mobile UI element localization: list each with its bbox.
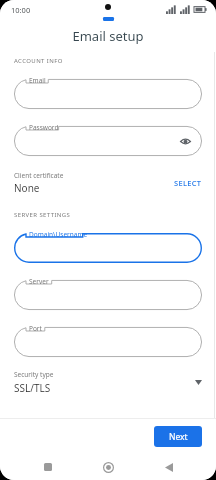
staticText: Next — [169, 431, 188, 443]
button[interactable]: Email — [14, 73, 202, 109]
staticText: Port — [29, 324, 42, 333]
staticText: ACCOUNT INFO — [14, 57, 63, 65]
button[interactable]: Server — [14, 274, 202, 310]
button[interactable]: SELECT — [174, 178, 202, 188]
staticText: 10:00 — [11, 5, 31, 15]
button[interactable]: Security type — [0, 370, 216, 395]
button[interactable]: Show password — [178, 134, 192, 148]
button[interactable]: Domain\Username — [14, 227, 202, 263]
staticText: Domain\Username — [29, 230, 88, 239]
staticText: Security type — [14, 370, 54, 379]
staticText: Client certificate — [14, 171, 64, 180]
button[interactable]: Password — [14, 120, 202, 156]
staticText: Password — [29, 123, 59, 132]
button[interactable]: Recent apps — [35, 454, 61, 480]
staticText: None — [14, 181, 40, 195]
staticText: SERVER SETTINGS — [14, 211, 71, 219]
staticText: Email — [29, 76, 46, 85]
staticText: Email setup — [72, 27, 144, 45]
button[interactable]: Port — [14, 321, 202, 357]
staticText: Server — [29, 277, 49, 286]
button[interactable]: Home — [95, 454, 121, 480]
staticText: SSL/TLS — [14, 381, 51, 395]
button[interactable]: Client certificate — [0, 169, 216, 197]
button[interactable]: Next — [154, 426, 202, 447]
button[interactable]: Back — [156, 454, 182, 480]
